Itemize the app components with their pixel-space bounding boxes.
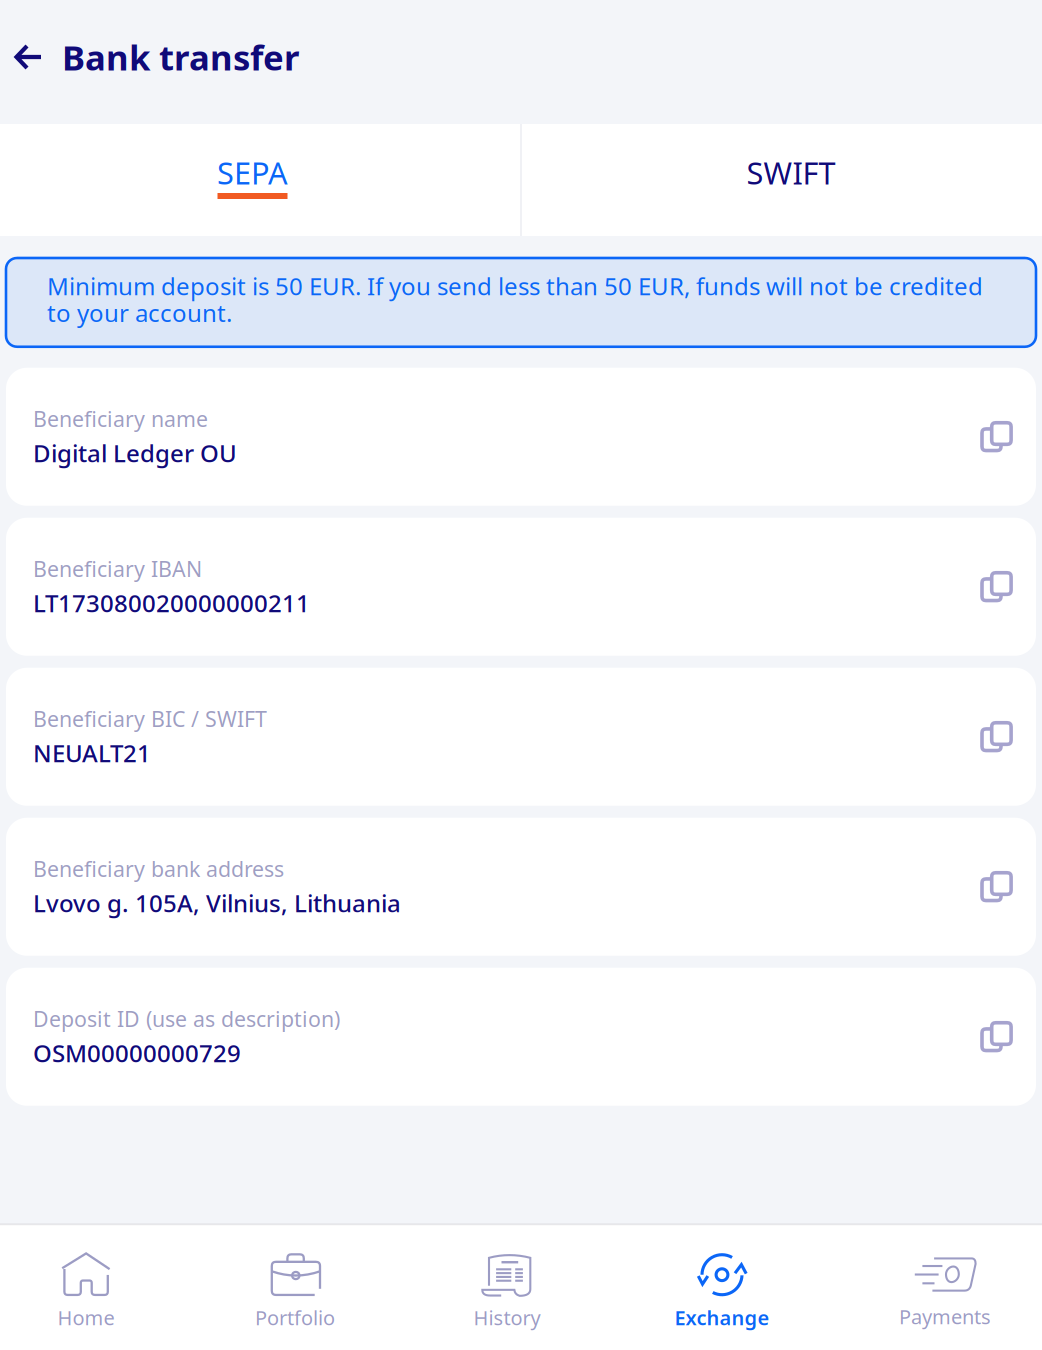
- button[interactable]: Deposit ID (use as description): [6, 968, 1036, 1106]
- staticText: OSM00000000729: [33, 1037, 241, 1069]
- button[interactable]: Home: [0, 1225, 172, 1350]
- button[interactable]: Beneficiary IBAN: [6, 518, 1036, 656]
- staticText: Payments: [899, 1303, 991, 1330]
- button[interactable]: History: [418, 1225, 596, 1350]
- staticText: Digital Ledger OU: [33, 437, 237, 469]
- staticText: History: [473, 1304, 540, 1331]
- button[interactable]: SEPA: [0, 124, 521, 236]
- staticText: Beneficiary IBAN: [33, 555, 202, 583]
- staticText: NEUALT21: [33, 737, 151, 769]
- button[interactable]: Exchange: [596, 1225, 848, 1350]
- staticText: SEPA: [217, 152, 288, 193]
- staticText: Home: [57, 1304, 114, 1331]
- button[interactable]: Payments: [848, 1226, 1042, 1350]
- staticText: Exchange: [674, 1304, 769, 1331]
- staticText: Lvovo g. 105A, Vilnius, Lithuania: [33, 887, 401, 919]
- staticText: LT173080020000000211: [33, 587, 310, 619]
- button[interactable]: Beneficiary BIC / SWIFT: [6, 668, 1036, 806]
- staticText: SWIFT: [746, 152, 835, 193]
- staticText: Portfolio: [255, 1304, 335, 1331]
- staticText: Bank transfer: [62, 34, 299, 80]
- staticText: Beneficiary bank address: [33, 855, 284, 883]
- staticText: Deposit ID (use as description): [33, 1005, 340, 1033]
- button[interactable]: Beneficiary bank address: [6, 818, 1036, 956]
- button[interactable]: Beneficiary name: [6, 368, 1036, 506]
- button[interactable]: SWIFT: [521, 124, 1042, 236]
- staticText: Minimum deposit is 50 EUR. If you send l…: [47, 270, 983, 329]
- button[interactable]: Portfolio: [172, 1225, 418, 1350]
- staticText: Beneficiary BIC / SWIFT: [33, 705, 267, 733]
- button[interactable]: Back: [0, 0, 62, 124]
- staticText: Beneficiary name: [33, 405, 208, 433]
